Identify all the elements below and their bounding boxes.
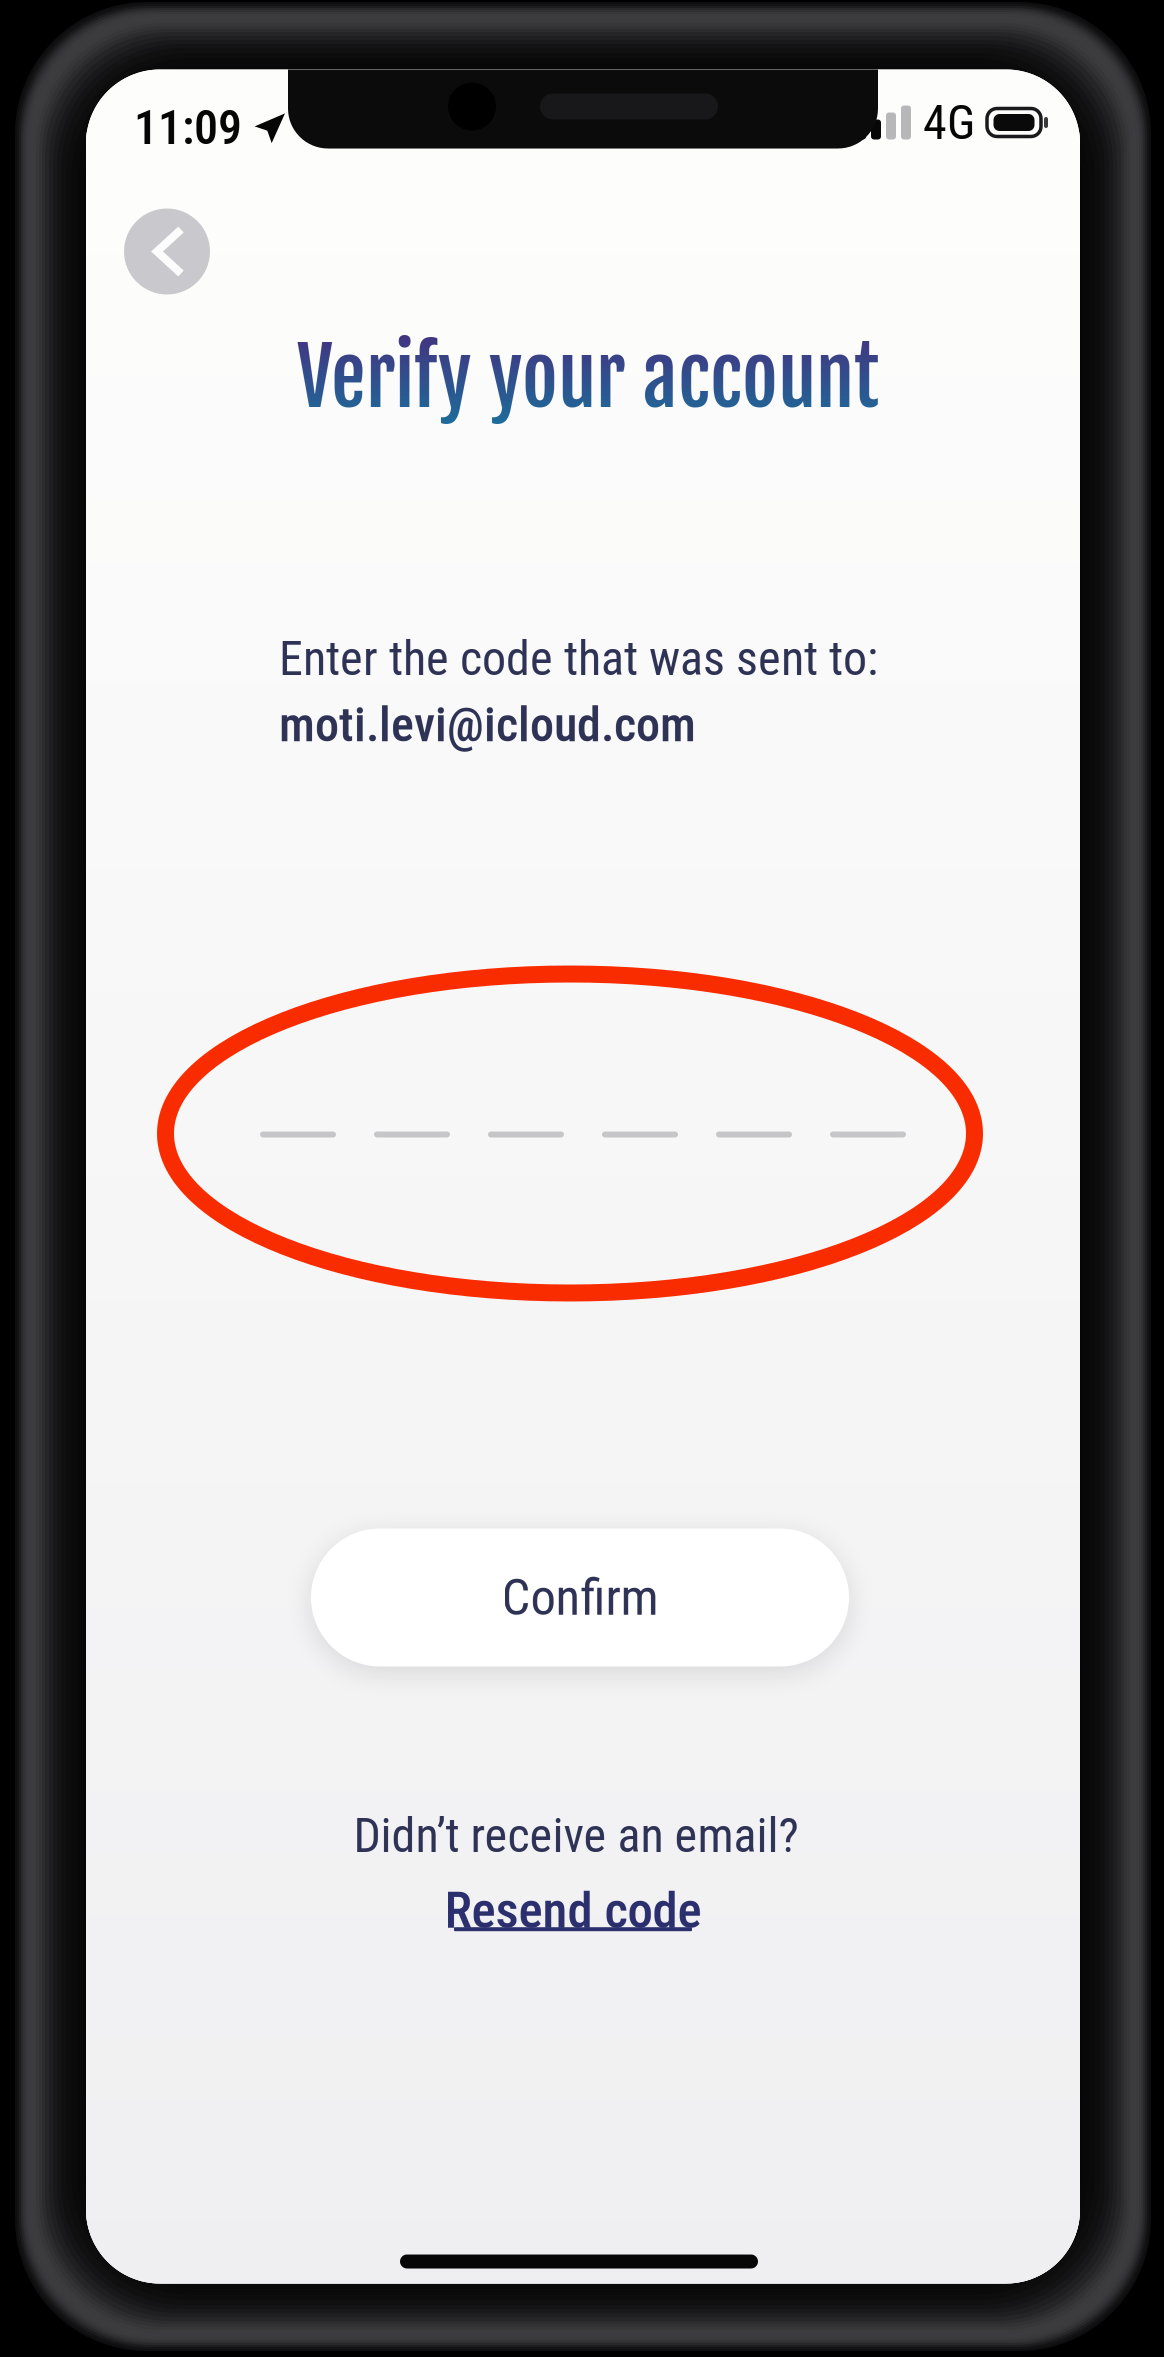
button[interactable]: Back — [124, 208, 210, 294]
staticText: moti.levi@icloud.com — [279, 697, 696, 753]
button[interactable]: Resend code — [423, 1882, 723, 1942]
staticText: 4G — [923, 94, 975, 151]
staticText: Resend code — [444, 1881, 701, 1940]
staticText: Didn’t receive an email? — [353, 1807, 798, 1864]
staticText: 11:09 — [134, 99, 242, 156]
button[interactable]: Confirm — [311, 1528, 849, 1666]
staticText: Confirm — [501, 1568, 658, 1627]
staticText: Enter the code that was sent to: — [279, 630, 878, 687]
